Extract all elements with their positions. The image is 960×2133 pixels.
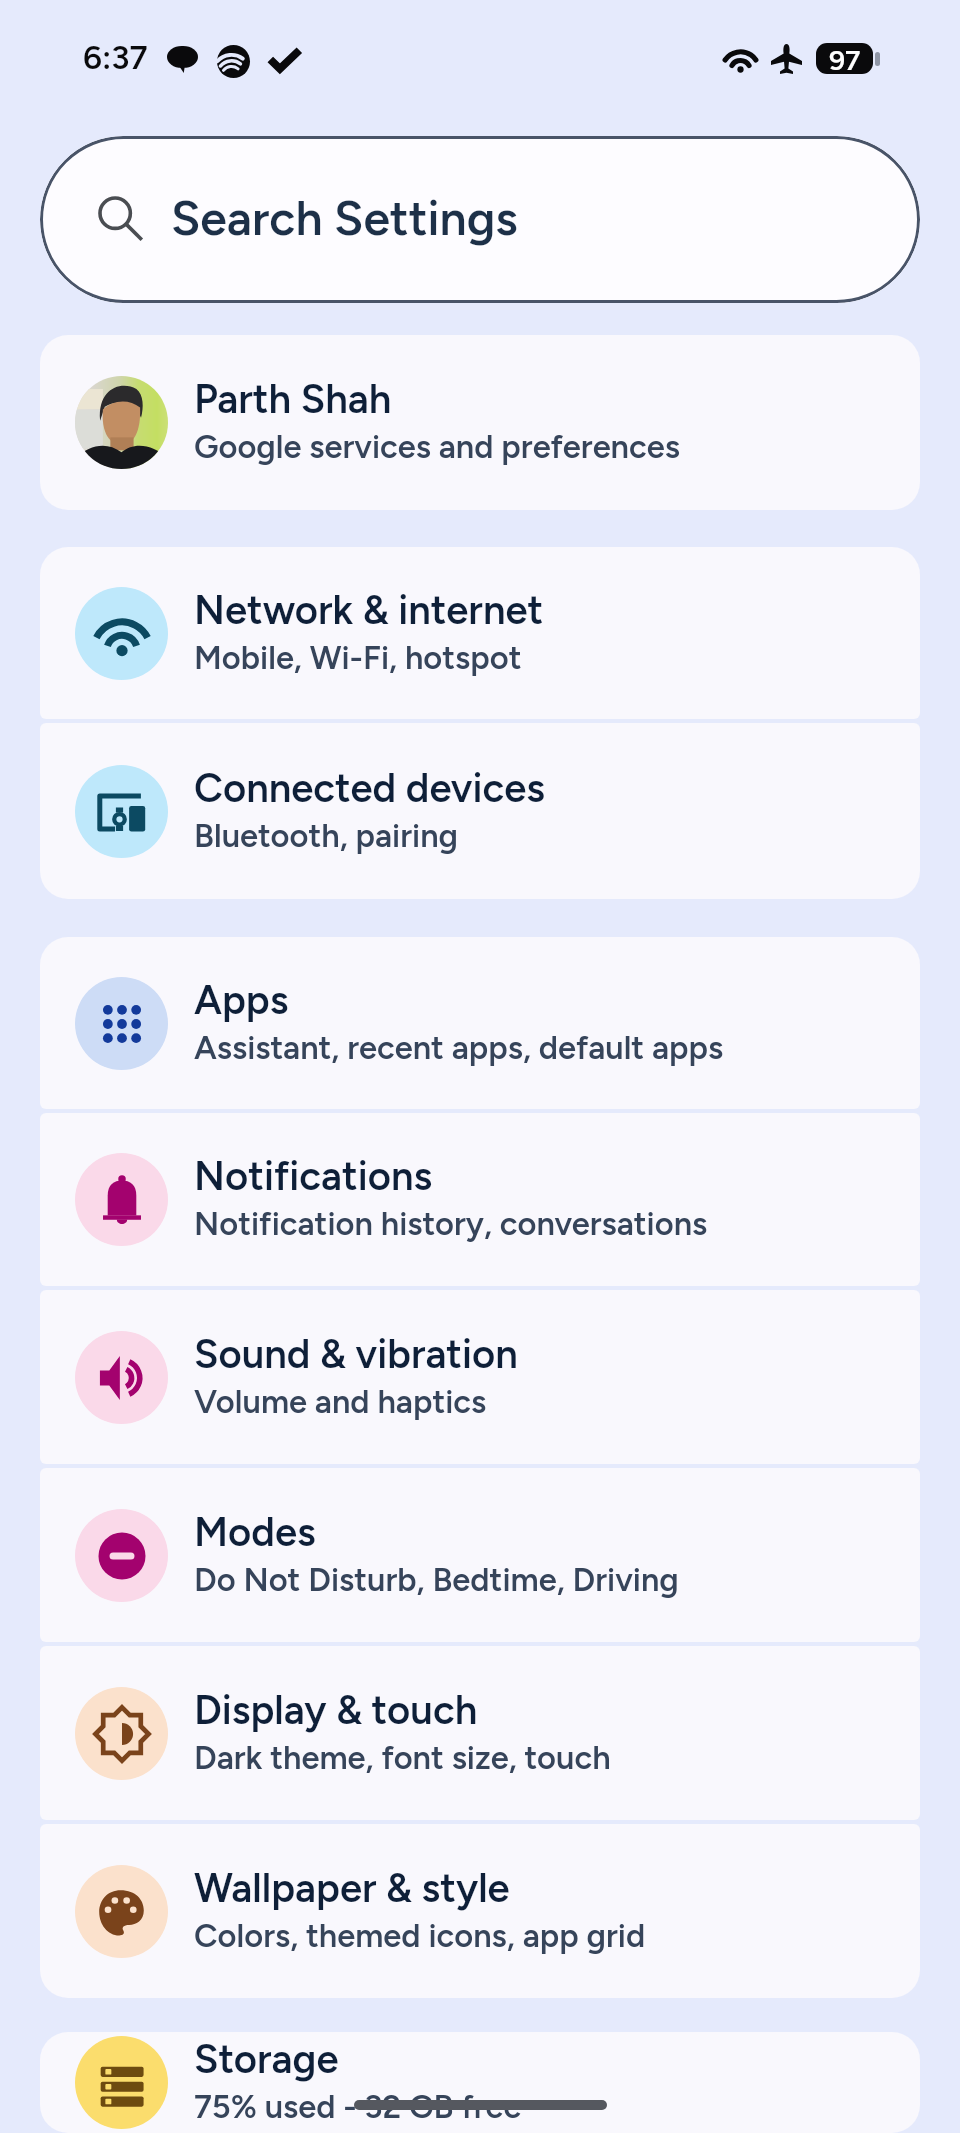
staticText: Assistant, recent apps, default apps <box>194 1028 724 1067</box>
staticText: Storage <box>194 2035 339 2083</box>
button[interactable]: Network & internet <box>40 547 920 719</box>
staticText: 75% used - 32 GB free <box>194 2087 522 2126</box>
staticText: Bluetooth, pairing <box>194 816 458 855</box>
button[interactable]: Apps <box>40 937 920 1109</box>
button[interactable]: Display & touch <box>40 1646 920 1820</box>
staticText: Search Settings <box>171 189 518 247</box>
staticText: Google services and preferences <box>194 427 680 466</box>
button[interactable]: Sound & vibration <box>40 1290 920 1464</box>
staticText: 97 <box>829 43 861 74</box>
staticText: Volume and haptics <box>194 1382 487 1421</box>
staticText: Wallpaper & style <box>194 1864 510 1912</box>
staticText: Colors, themed icons, app grid <box>194 1916 646 1955</box>
staticText: Connected devices <box>194 764 545 812</box>
staticText: Mobile, Wi-Fi, hotspot <box>194 638 522 677</box>
staticText: Notification history, conversations <box>194 1204 708 1243</box>
staticText: 6:37 <box>83 38 148 78</box>
button[interactable]: Storage <box>40 2032 920 2133</box>
button[interactable]: Search Settings <box>40 136 920 303</box>
staticText: Do Not Disturb, Bedtime, Driving <box>194 1560 679 1599</box>
staticText: Parth Shah <box>194 375 392 423</box>
staticText: Apps <box>194 976 289 1024</box>
staticText: Sound & vibration <box>194 1330 518 1378</box>
button[interactable]: Modes <box>40 1468 920 1642</box>
button[interactable]: Wallpaper & style <box>40 1824 920 1998</box>
staticText: Display & touch <box>194 1686 478 1734</box>
button[interactable]: Parth Shah <box>40 335 920 510</box>
staticText: Dark theme, font size, touch <box>194 1738 611 1777</box>
button[interactable]: Notifications <box>40 1113 920 1286</box>
staticText: Notifications <box>194 1152 433 1200</box>
staticText: Modes <box>194 1508 316 1556</box>
staticText: Network & internet <box>194 586 544 634</box>
button[interactable]: Connected devices <box>40 723 920 899</box>
